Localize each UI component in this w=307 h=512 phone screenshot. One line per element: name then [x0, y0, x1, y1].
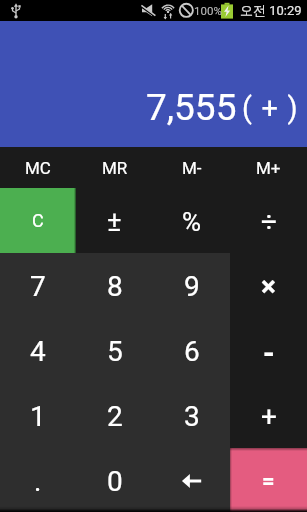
- button[interactable]: 7,555: [0, 21, 307, 147]
- staticText: -: [263, 335, 275, 370]
- button[interactable]: 2: [76, 383, 153, 448]
- staticText: 1: [30, 400, 46, 433]
- staticText: 6: [184, 335, 200, 368]
- button[interactable]: ÷: [230, 188, 307, 253]
- staticText: 2: [107, 400, 123, 433]
- button[interactable]: +: [230, 383, 307, 448]
- button[interactable]: .: [0, 448, 76, 512]
- staticText: 오전 10:29: [240, 2, 302, 18]
- staticText: %: [182, 207, 202, 237]
- button[interactable]: M-: [153, 147, 230, 188]
- staticText: =: [262, 468, 275, 494]
- staticText: 7,555: [146, 86, 237, 129]
- button[interactable]: 8: [76, 253, 153, 318]
- button[interactable]: =: [230, 448, 307, 512]
- staticText: ×: [261, 270, 276, 303]
- staticText: 4: [30, 335, 46, 368]
- staticText: 8: [107, 270, 123, 303]
- button[interactable]: %: [153, 188, 230, 253]
- button[interactable]: -: [230, 318, 307, 383]
- button[interactable]: MC: [0, 147, 76, 188]
- staticText: C: [32, 210, 44, 231]
- button[interactable]: MR: [76, 147, 153, 188]
- button[interactable]: 1: [0, 383, 76, 448]
- button[interactable]: 3: [153, 383, 230, 448]
- button[interactable]: ±: [76, 188, 153, 253]
- staticText: ( + ): [242, 91, 299, 125]
- staticText: ±: [107, 206, 122, 238]
- staticText: 5: [107, 335, 123, 368]
- staticText: M+: [256, 158, 281, 178]
- button[interactable]: 9: [153, 253, 230, 318]
- staticText: 7: [30, 270, 46, 303]
- button[interactable]: M+: [230, 147, 307, 188]
- button[interactable]: [153, 448, 230, 512]
- button[interactable]: C: [0, 188, 76, 253]
- staticText: MC: [25, 158, 51, 178]
- button[interactable]: 0: [76, 448, 153, 512]
- button[interactable]: 7: [0, 253, 76, 318]
- button[interactable]: ×: [230, 253, 307, 318]
- button[interactable]: 6: [153, 318, 230, 383]
- staticText: MR: [102, 158, 128, 178]
- staticText: ÷: [261, 205, 277, 238]
- staticText: M-: [182, 158, 202, 178]
- staticText: +: [261, 400, 277, 433]
- button[interactable]: 4: [0, 318, 76, 383]
- staticText: 9: [184, 270, 200, 303]
- staticText: 100%: [194, 4, 222, 17]
- staticText: 3: [184, 400, 200, 433]
- staticText: 0: [107, 465, 123, 498]
- staticText: .: [34, 465, 42, 498]
- button[interactable]: 5: [76, 318, 153, 383]
